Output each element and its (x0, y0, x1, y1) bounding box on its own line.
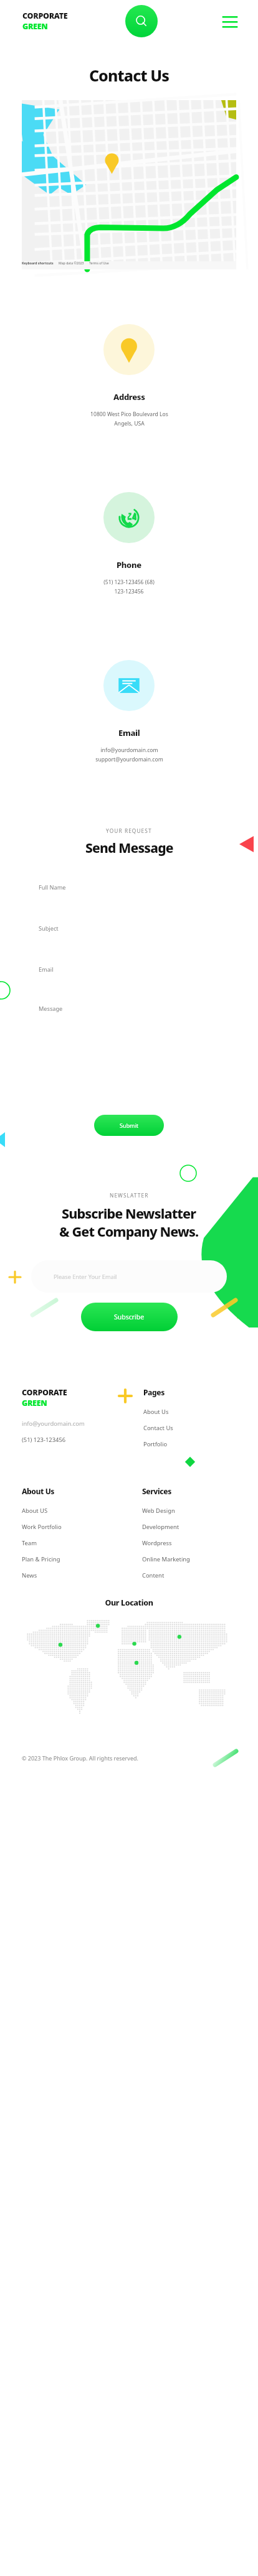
staticText: Send Message (85, 839, 173, 857)
staticText: GREEN (22, 21, 48, 32)
staticText: Our Location (22, 1597, 236, 1608)
button[interactable]: Message (27, 994, 231, 1094)
staticText: Map data ©2023 (59, 261, 84, 265)
staticText: About Us (22, 1486, 55, 1496)
button[interactable]: Subject (27, 912, 231, 944)
staticText: Pages (143, 1387, 165, 1397)
staticText: © 2023 The Phlox Group. All rights reser… (22, 1754, 138, 1762)
button[interactable]: Email (27, 953, 231, 985)
staticText: (51) 123-123456 (68) (103, 579, 155, 586)
button[interactable]: Phone (21, 465, 237, 625)
staticText: Please Enter Your Email (54, 1273, 117, 1281)
staticText: CORPORATE (22, 11, 68, 21)
button[interactable]: Content (142, 1571, 165, 1579)
staticText: Email (39, 965, 54, 974)
button[interactable]: Web Design (142, 1507, 175, 1515)
staticText: NEWSLATTER (110, 1192, 149, 1199)
staticText: Message (39, 1005, 63, 1013)
staticText: Phone (117, 559, 141, 570)
button[interactable]: Plan & Pricing (22, 1555, 60, 1563)
button[interactable]: About Us (143, 1408, 169, 1416)
staticText: Keyboard shortcuts (22, 261, 54, 265)
button[interactable]: Portfolio (143, 1440, 168, 1448)
staticText: Submit (120, 1122, 139, 1129)
staticText: Address (113, 391, 145, 402)
staticText: Terms of Use (89, 261, 109, 265)
staticText: CORPORATE (22, 1387, 67, 1398)
button[interactable]: Email (21, 633, 237, 793)
button[interactable]: Full Name (27, 871, 231, 903)
button[interactable]: Development (142, 1523, 179, 1531)
button[interactable]: Team (22, 1539, 37, 1547)
button[interactable]: Menu (219, 11, 241, 32)
button[interactable]: Wordpress (142, 1539, 172, 1547)
button[interactable]: Subscribe (81, 1303, 178, 1331)
staticText: Services (142, 1486, 171, 1496)
button[interactable]: Search (125, 5, 158, 37)
button[interactable]: Online Marketing (142, 1555, 190, 1563)
button[interactable]: Submit (94, 1115, 164, 1136)
staticText: 10800 West Pico Boulevard Los (90, 411, 168, 418)
staticText: YOUR REQUEST (106, 827, 152, 834)
staticText: Email (118, 727, 140, 738)
staticText: Subject (39, 924, 59, 932)
button[interactable]: Work Portfolio (22, 1523, 62, 1531)
staticText: Subscribe Newslatter (62, 1204, 196, 1222)
staticText: 123-123456 (114, 588, 144, 595)
staticText: info@yourdomain.com (100, 746, 158, 754)
button[interactable]: info@yourdomain.com (22, 1420, 85, 1428)
button[interactable]: Contact Us (143, 1424, 173, 1432)
button[interactable]: (51) 123-123456 (22, 1436, 66, 1444)
button[interactable]: News (22, 1571, 37, 1579)
button[interactable]: Please Enter Your Email (31, 1260, 227, 1293)
button[interactable]: About US (22, 1507, 48, 1515)
button[interactable]: Address (21, 297, 237, 457)
staticText: Angels, USA (114, 420, 145, 427)
staticText: Contact Us (0, 65, 258, 86)
staticText: support@yourdomain.com (95, 756, 163, 763)
staticText: Full Name (39, 883, 66, 891)
staticText: & Get Company News. (59, 1222, 199, 1240)
staticText: Subscribe (114, 1313, 145, 1321)
staticText: GREEN (22, 1398, 47, 1408)
